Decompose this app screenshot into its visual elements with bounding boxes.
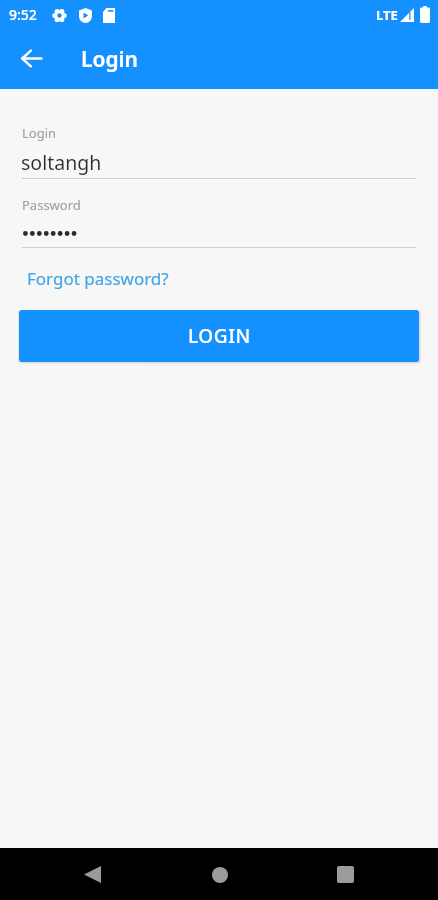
button[interactable]: Forgot password? xyxy=(21,263,175,294)
button[interactable]: Back xyxy=(0,33,62,89)
staticText: soltangh xyxy=(21,149,102,176)
button[interactable]: LOGIN xyxy=(19,310,419,362)
staticText: LTE xyxy=(376,6,398,24)
button[interactable]: Recents xyxy=(322,851,369,898)
staticText: Login xyxy=(81,45,138,74)
staticText: LOGIN xyxy=(188,323,251,349)
staticText: Login xyxy=(22,124,57,142)
staticText: 9:52 xyxy=(9,5,37,24)
staticText: Password xyxy=(22,196,81,214)
button[interactable]: Back xyxy=(69,851,116,898)
button[interactable]: Home xyxy=(196,851,243,898)
staticText: Forgot password? xyxy=(27,267,169,290)
